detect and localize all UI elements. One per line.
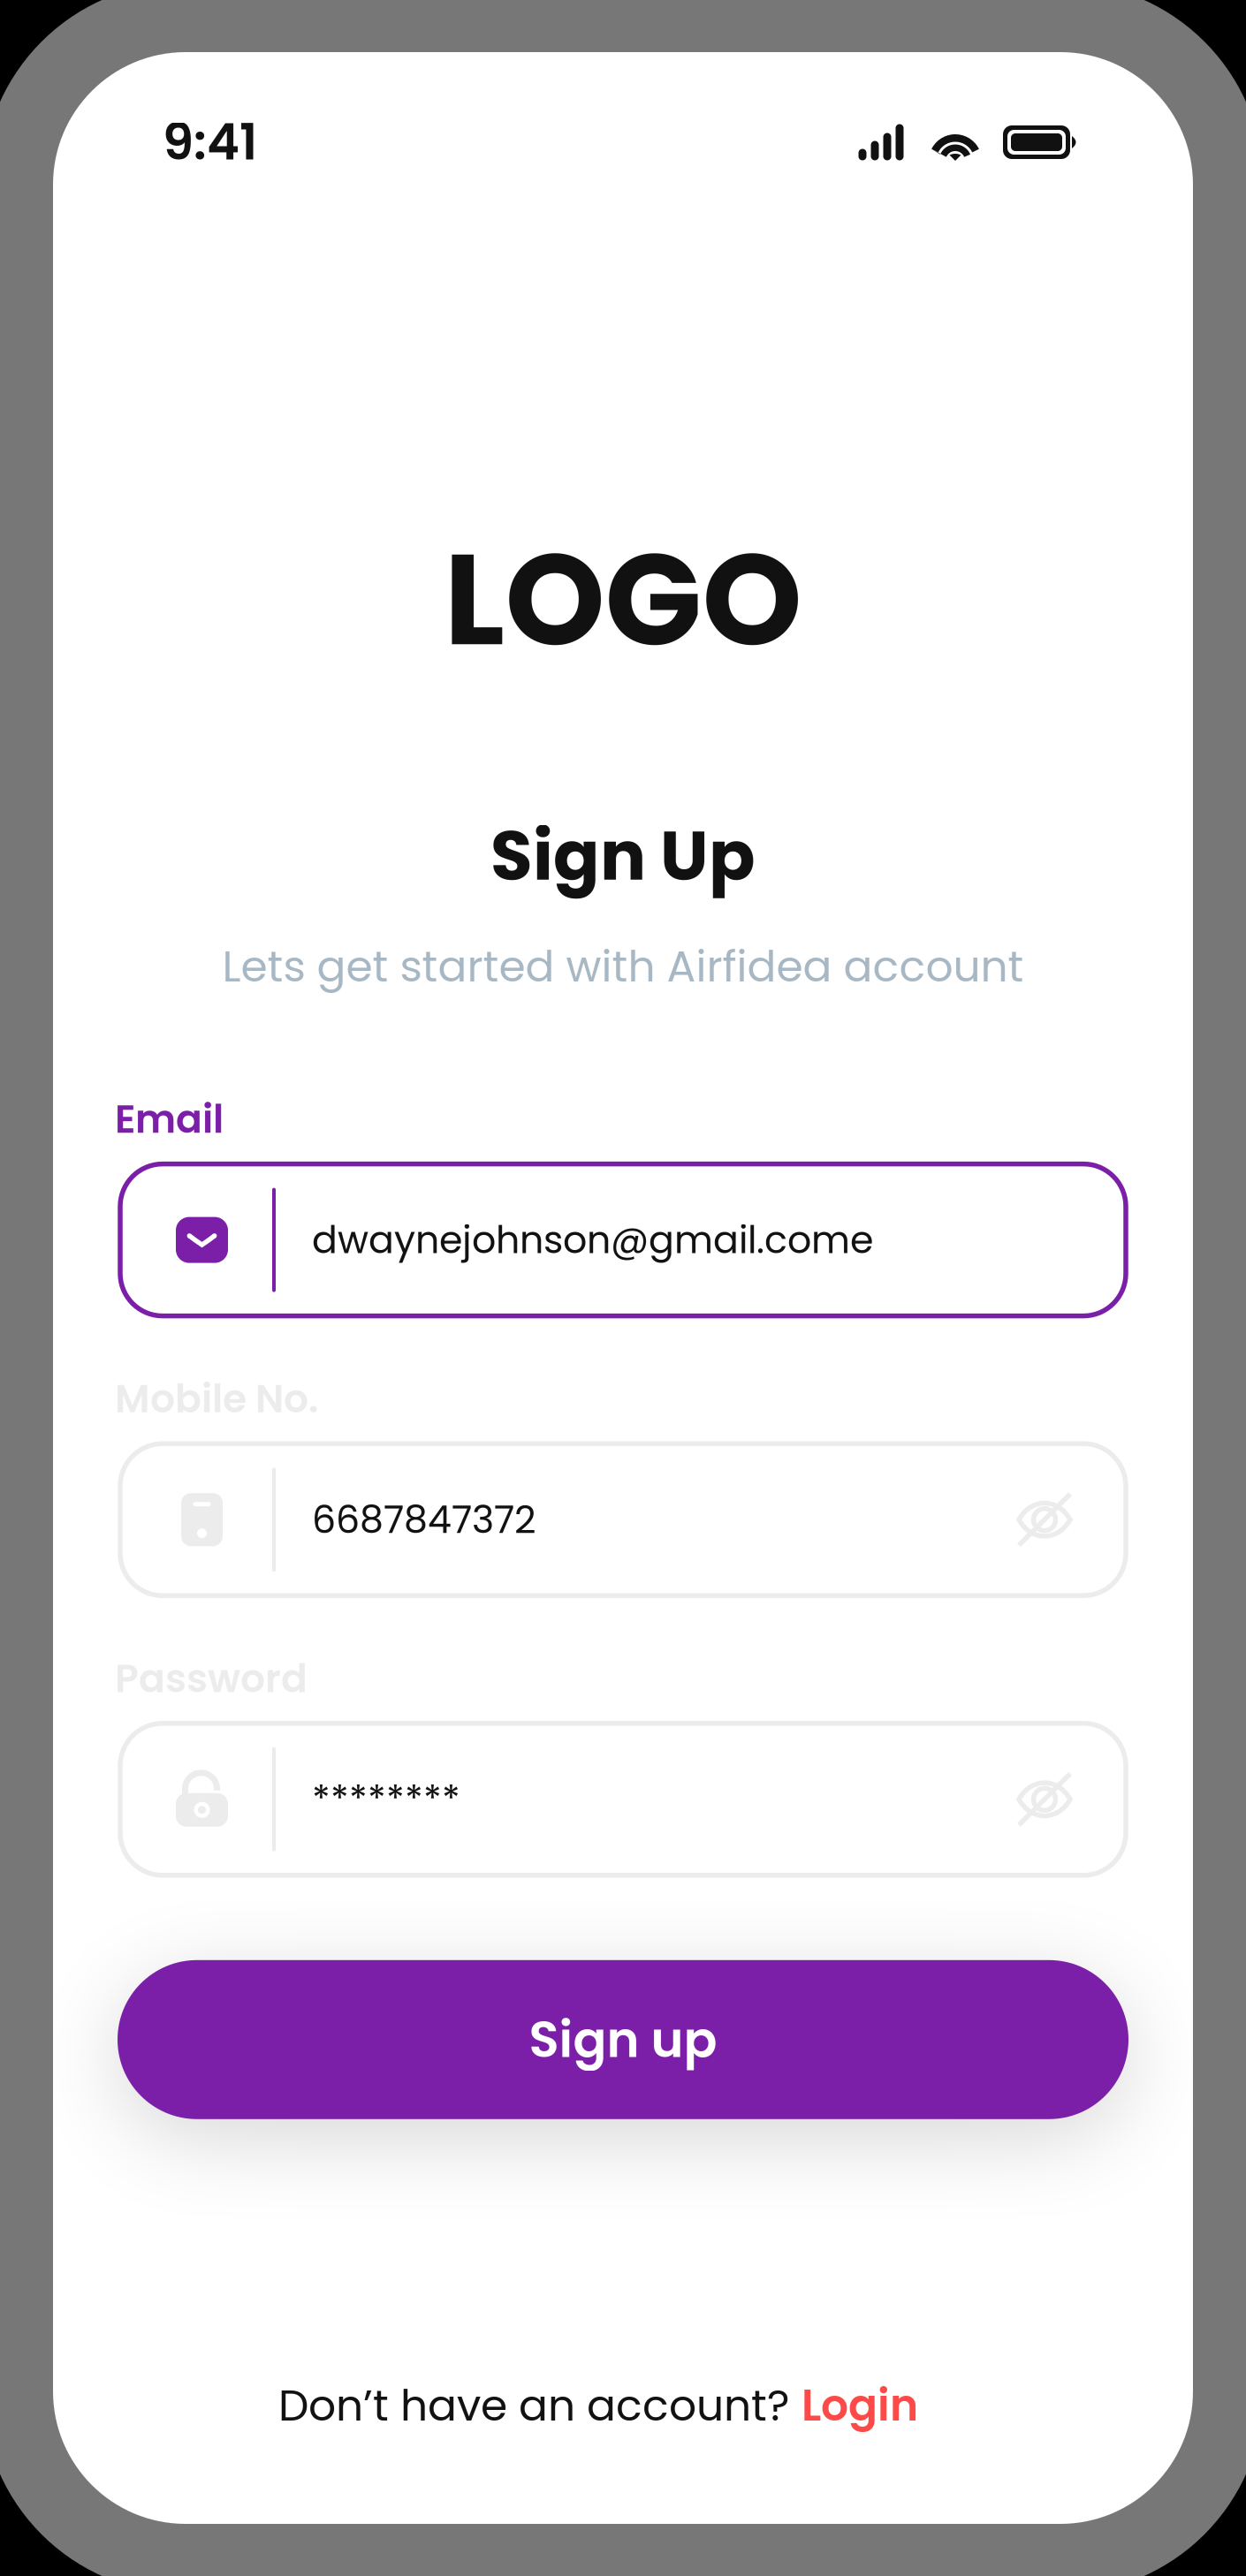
button[interactable]: Don’t have an account? bbox=[303, 2375, 943, 2436]
staticText: Sign up bbox=[529, 2005, 717, 2074]
staticText: ******** bbox=[312, 1773, 460, 1826]
staticText: 6687847372 bbox=[312, 1493, 536, 1546]
staticText: Sign Up bbox=[490, 808, 756, 904]
staticText: Login bbox=[802, 2375, 918, 2436]
staticText: 9:41 bbox=[163, 108, 257, 177]
staticText: dwaynejohnson@gmail.come bbox=[312, 1214, 873, 1266]
staticText: Lets get started with Airfidea account bbox=[222, 936, 1024, 996]
button[interactable]: ******** bbox=[120, 1723, 1126, 1875]
staticText: Password bbox=[115, 1651, 308, 1706]
staticText: Email bbox=[115, 1092, 224, 1146]
staticText: LOGO bbox=[444, 511, 802, 689]
button[interactable]: Sign up bbox=[53, 1960, 1193, 2119]
staticText: Mobile No. bbox=[115, 1372, 318, 1426]
button[interactable]: 6687847372 bbox=[120, 1444, 1126, 1596]
button[interactable]: dwaynejohnson@gmail.come bbox=[120, 1164, 1126, 1316]
staticText: Don’t have an account? bbox=[278, 2375, 802, 2436]
